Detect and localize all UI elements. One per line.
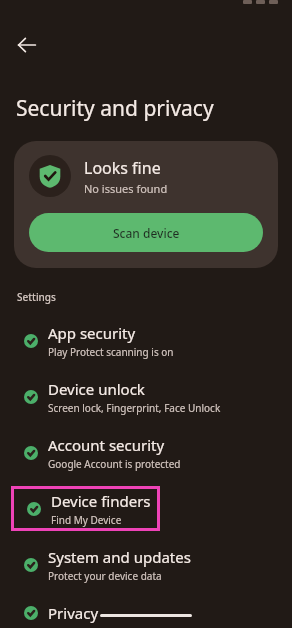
- staticText: Protect your device data: [48, 569, 162, 583]
- button[interactable]: App security: [0, 318, 292, 363]
- staticText: Settings: [17, 290, 56, 304]
- staticText: Device unlock: [48, 379, 145, 399]
- button[interactable]: Scan device: [29, 213, 263, 252]
- button[interactable]: Privacy: [0, 598, 292, 628]
- button[interactable]: System and updates: [0, 542, 292, 587]
- staticText: Looks fine: [84, 157, 161, 179]
- staticText: Device finders: [51, 491, 151, 511]
- staticText: Play Protect scanning is on: [48, 345, 174, 359]
- staticText: Privacy: [48, 603, 99, 623]
- button[interactable]: Device finders: [14, 489, 157, 528]
- staticText: Scan device: [113, 225, 180, 241]
- staticText: System and updates: [48, 547, 191, 567]
- staticText: Screen lock, Fingerprint, Face Unlock: [48, 401, 221, 415]
- button[interactable]: Account security: [0, 430, 292, 475]
- button[interactable]: Back: [6, 24, 48, 66]
- staticText: Security and privacy: [16, 94, 214, 123]
- staticText: No issues found: [84, 181, 168, 196]
- button[interactable]: Device unlock: [0, 374, 292, 419]
- staticText: App security: [48, 323, 136, 343]
- staticText: Google Account is protected: [48, 457, 181, 471]
- button[interactable]: Looks fine: [14, 141, 278, 268]
- staticText: Find My Device: [51, 513, 122, 527]
- staticText: Account security: [48, 435, 165, 455]
